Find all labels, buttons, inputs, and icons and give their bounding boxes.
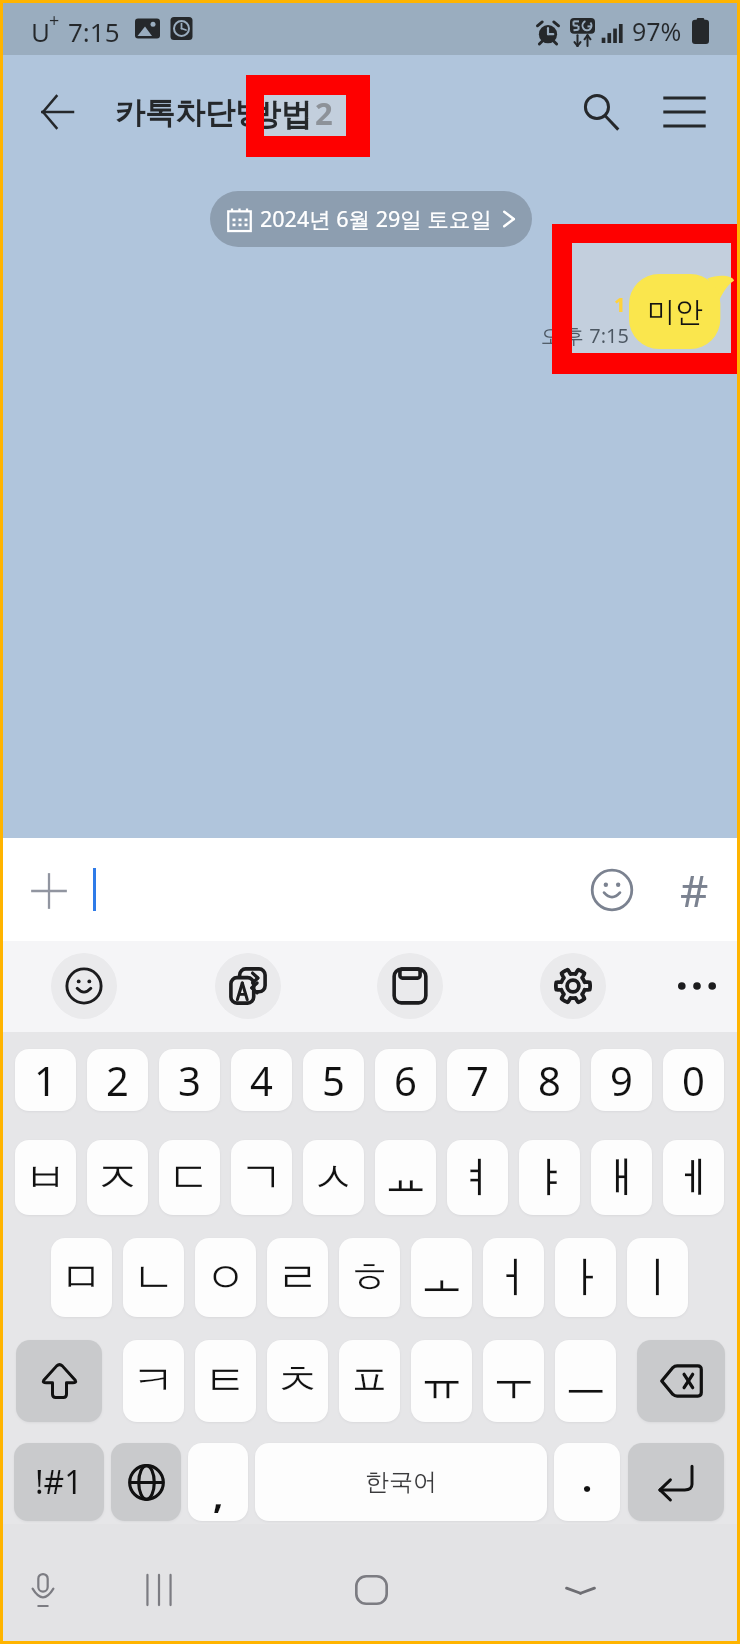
button[interactable]: Search [557,68,645,156]
button[interactable]: Enter [628,1443,724,1521]
staticText: ㅏ [564,1251,607,1305]
button[interactable]: ㅛ [375,1140,436,1215]
staticText: 8 [538,1053,561,1107]
staticText: 2 [106,1053,129,1107]
button[interactable]: ㅍ [339,1340,400,1422]
button[interactable]: 7 [447,1049,508,1111]
staticText: 7 [466,1053,489,1107]
button[interactable]: More options [664,953,730,1019]
button[interactable]: Menu [640,68,728,156]
button[interactable]: 미안 [629,274,721,349]
staticText: ㅗ [420,1251,463,1305]
staticText: 5 [322,1053,345,1107]
button[interactable]: ㄴ [123,1238,184,1317]
button[interactable]: Translate [215,953,281,1019]
button[interactable]: Hide keyboard [540,1546,620,1634]
staticText: 오후 7:15 [572,322,629,349]
staticText: ㅛ [384,1151,427,1205]
button[interactable]: Emoji keyboard [51,953,117,1019]
button[interactable]: ㅂ [15,1140,76,1215]
button[interactable]: ㄷ [159,1140,220,1215]
button[interactable]: Backspace [637,1340,725,1422]
button[interactable]: ㅡ [555,1340,616,1422]
button[interactable]: 3 [159,1049,220,1111]
staticText: ㅈ [96,1151,139,1205]
staticText: 한국어 [365,1467,437,1497]
staticText: 6 [394,1053,417,1107]
staticText: , [213,1470,224,1519]
button[interactable]: 5 [303,1049,364,1111]
button[interactable]: ㄹ [267,1238,328,1317]
button[interactable]: ㄱ [231,1140,292,1215]
button[interactable]: Clipboard [377,953,443,1019]
button[interactable]: ㅋ [123,1340,184,1422]
button[interactable]: Hashtag [663,859,725,921]
button[interactable]: 1 [15,1049,76,1111]
button[interactable]: ㅇ [195,1238,256,1317]
staticText: ㅔ [672,1151,715,1205]
button[interactable]: Recent apps [119,1546,199,1634]
button[interactable]: Voice input [3,1546,83,1634]
staticText: ㅣ [636,1251,679,1305]
button[interactable]: !#1 [14,1443,104,1521]
staticText: ㅐ [600,1151,643,1205]
button[interactable]: ㅠ [411,1340,472,1422]
staticText: 3 [178,1053,201,1107]
button[interactable]: 한국어 [255,1443,547,1521]
staticText: ㅅ [312,1151,355,1205]
button[interactable]: Change language [111,1443,181,1521]
button[interactable]: ㅐ [591,1140,652,1215]
staticText: ㅕ [456,1151,499,1205]
button[interactable]: , [188,1443,248,1521]
staticText: + [49,8,60,33]
button[interactable]: ㅑ [519,1140,580,1215]
button[interactable]: ㅈ [87,1140,148,1215]
button[interactable]: ㅅ [303,1140,364,1215]
button[interactable]: 6 [375,1049,436,1111]
staticText: !#1 [35,1460,83,1504]
staticText: 미안 [647,294,703,329]
button[interactable]: Add attachment [19,861,79,921]
staticText: . [582,1454,593,1503]
button[interactable]: ㅣ [627,1238,688,1317]
staticText: ㄱ [240,1151,283,1205]
button[interactable]: 2 [87,1049,148,1111]
button[interactable]: ㅊ [267,1340,328,1422]
staticText: ㅇ [204,1251,247,1305]
button[interactable]: Back [13,68,101,156]
staticText: 2024년 6월 29일 토요일 [260,204,492,233]
staticText: 7:15 [68,14,120,49]
button[interactable]: Shift [16,1340,102,1422]
button[interactable]: 2024년 6월 29일 토요일 [210,191,532,247]
staticText: ㅊ [276,1354,319,1408]
button[interactable]: ㅎ [339,1238,400,1317]
staticText: ㅓ [492,1251,535,1305]
button[interactable]: ㅗ [411,1238,472,1317]
staticText: ㅠ [420,1354,463,1408]
button[interactable]: ㅜ [483,1340,544,1422]
button[interactable]: ㅓ [483,1238,544,1317]
button[interactable]: ㅌ [195,1340,256,1422]
staticText: 2 [303,91,321,132]
staticText: 4 [250,1053,273,1107]
button[interactable]: ㅏ [555,1238,616,1317]
staticText: # [680,860,709,920]
button[interactable]: Emoji [581,859,643,921]
button[interactable]: 9 [591,1049,652,1111]
staticText: ㅜ [492,1354,535,1408]
button[interactable]: ㅕ [447,1140,508,1215]
staticText: ㅡ [564,1354,607,1408]
button[interactable]: 8 [519,1049,580,1111]
button[interactable]: 4 [231,1049,292,1111]
staticText: 1 [614,291,626,318]
button[interactable]: ㅔ [663,1140,724,1215]
staticText: 97% [632,14,682,48]
staticText: ㄷ [168,1151,211,1205]
staticText: ㄹ [276,1251,319,1305]
button[interactable]: 0 [663,1049,724,1111]
button[interactable]: Home [331,1546,411,1634]
button[interactable]: Keyboard settings [540,953,606,1019]
button[interactable]: ㅁ [51,1238,112,1317]
staticText: 1 [34,1053,57,1107]
button[interactable]: . [554,1443,620,1521]
